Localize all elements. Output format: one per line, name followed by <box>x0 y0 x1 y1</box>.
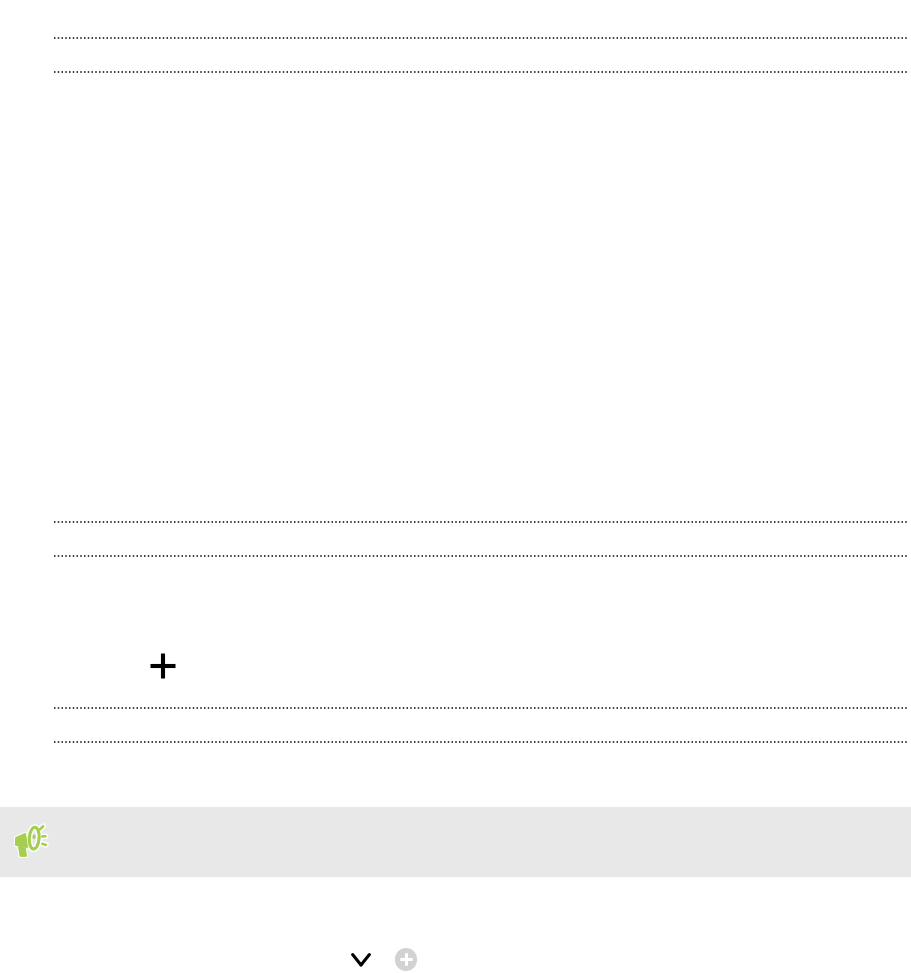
button[interactable] <box>54 711 907 743</box>
button[interactable]: Add item <box>395 948 417 971</box>
button[interactable]: Announcements <box>9 822 51 864</box>
button[interactable] <box>54 7 907 39</box>
button[interactable]: Add <box>146 649 180 683</box>
button[interactable] <box>54 491 907 523</box>
button[interactable] <box>54 677 907 709</box>
button[interactable]: Show more <box>348 948 374 970</box>
button[interactable] <box>54 525 907 557</box>
button[interactable] <box>54 41 907 73</box>
button[interactable]: Announcements <box>0 807 911 877</box>
